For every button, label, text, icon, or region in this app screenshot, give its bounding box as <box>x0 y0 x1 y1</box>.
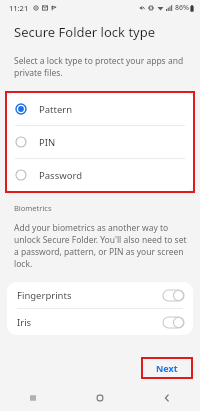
staticText: Add your biometrics as another way to un… <box>14 222 187 270</box>
staticText: Pattern <box>39 103 73 116</box>
staticText: 86% <box>175 3 189 13</box>
staticText: Iris <box>17 316 163 329</box>
button[interactable]: Back <box>133 385 200 411</box>
button[interactable]: Iris <box>7 309 193 335</box>
other: Fingerprints toggle <box>163 290 184 301</box>
other: Iris toggle <box>163 317 184 328</box>
button[interactable]: Next <box>143 359 191 377</box>
button[interactable]: Pattern <box>7 93 193 125</box>
button[interactable]: Password <box>7 159 193 191</box>
button[interactable]: PIN <box>7 126 193 158</box>
staticText: Fingerprints <box>17 289 163 302</box>
staticText: PIN <box>39 136 56 149</box>
button[interactable]: Fingerprints <box>7 282 193 308</box>
button[interactable]: Home <box>66 385 133 411</box>
staticText: Secure Folder lock type <box>14 23 156 41</box>
button[interactable]: Recents <box>0 385 66 411</box>
staticText: Next <box>156 362 178 374</box>
staticText: Password <box>39 169 82 182</box>
staticText: Biometrics <box>14 203 52 213</box>
staticText: Select a lock type to protect your apps … <box>14 55 184 79</box>
staticText: 11:21 <box>9 3 29 13</box>
